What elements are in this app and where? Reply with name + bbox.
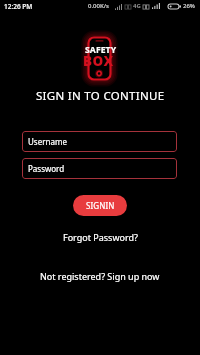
staticText: Not registered? Sign up now	[40, 270, 160, 282]
staticText: BOX	[83, 52, 114, 70]
staticText: SIGNIN	[86, 200, 115, 211]
staticText: 26%	[183, 2, 195, 10]
button[interactable]: Username	[22, 131, 177, 152]
button[interactable]: Not registered? Sign up now	[34, 266, 166, 286]
staticText: 4G	[133, 2, 141, 10]
staticText: Forgot Password?	[63, 231, 138, 243]
staticText: Username	[28, 136, 67, 147]
other: Safety Box logo	[84, 33, 116, 85]
staticText: SIGN IN TO CONTINUE	[36, 88, 165, 104]
button[interactable]: Password	[22, 158, 177, 179]
button[interactable]: Forgot Password?	[57, 227, 144, 247]
button[interactable]: SIGNIN	[73, 195, 127, 216]
staticText: 0.00K/s	[88, 2, 109, 10]
staticText: Password	[28, 163, 65, 174]
staticText: 12:26 PM	[4, 2, 33, 11]
staticText: SAFETY	[85, 44, 117, 56]
